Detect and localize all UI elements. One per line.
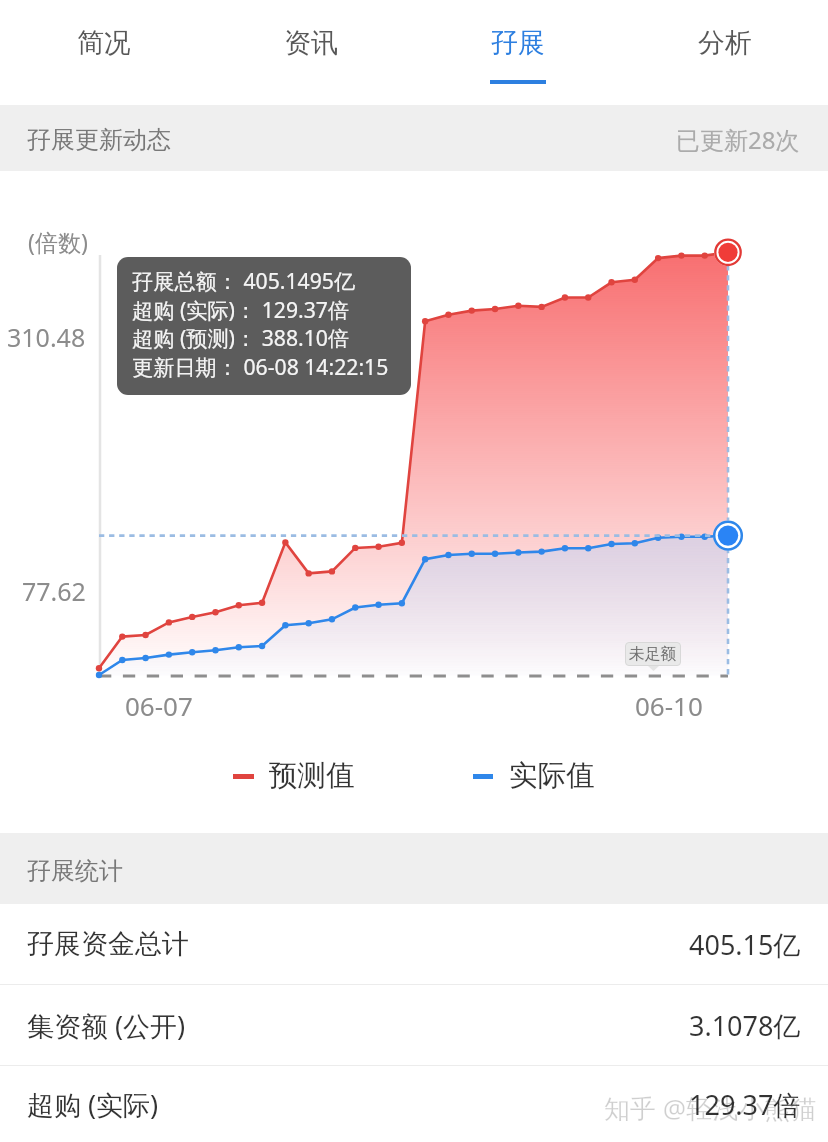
staticText: 预测值 [269, 758, 355, 794]
staticText: 孖展总额： 405.1495亿 [132, 266, 356, 295]
button[interactable]: 预测值 [233, 758, 355, 794]
staticText: (倍数) [28, 226, 88, 257]
button[interactable]: 分析 [621, 0, 828, 105]
staticText: 06-10 [635, 688, 703, 723]
staticText: 129.37倍 [689, 1086, 801, 1123]
staticText: 孖展更新动态 [27, 125, 171, 155]
staticText: 未足额 [629, 644, 677, 664]
staticText: 简况 [77, 26, 131, 60]
staticText: 超购 (实际) [27, 1086, 159, 1123]
staticText: 超购 (预测)： 388.10倍 [132, 323, 350, 352]
staticText: 超购 (实际)： 129.37倍 [132, 295, 350, 324]
button[interactable]: 实际值 [473, 758, 595, 794]
button[interactable]: 资讯 [207, 0, 414, 105]
button[interactable]: 超购 (实际) [0, 1066, 828, 1142]
staticText: 集资额 (公开) [27, 1007, 186, 1044]
staticText: 405.15亿 [689, 926, 801, 963]
staticText: 孖展 [491, 26, 545, 60]
button[interactable]: 简况 [0, 0, 207, 105]
staticText: 孖展资金总计 [27, 927, 189, 961]
staticText: 更新日期： 06-08 14:22:15 [132, 352, 389, 381]
staticText: 06-07 [125, 688, 193, 723]
staticText: 3.1078亿 [689, 1007, 801, 1044]
staticText: 资讯 [284, 26, 338, 60]
button[interactable]: 孖展资金总计 [0, 904, 828, 984]
staticText: 知乎 @轻浅小熊猫 [604, 1090, 817, 1126]
staticText: 实际值 [509, 758, 595, 794]
staticText: 77.62 [22, 574, 86, 608]
button[interactable]: 孖展 [414, 0, 621, 105]
staticText: 分析 [698, 26, 752, 60]
staticText: 孖展统计 [27, 856, 123, 886]
staticText: 已更新28次 [676, 123, 800, 156]
staticText: 310.48 [7, 320, 86, 354]
button[interactable]: 集资额 (公开) [0, 985, 828, 1065]
